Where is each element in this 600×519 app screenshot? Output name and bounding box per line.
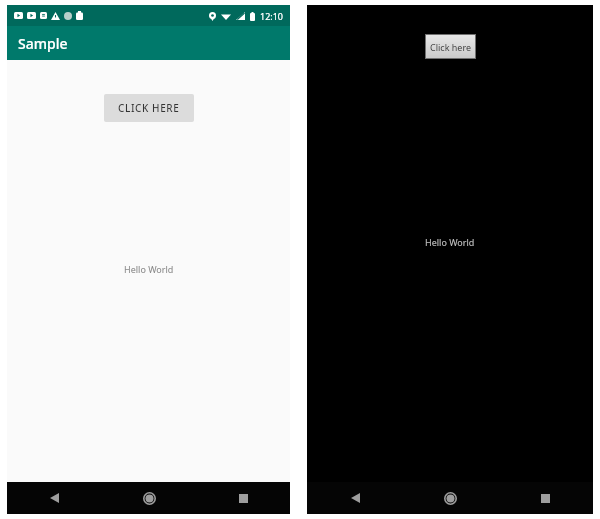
staticText: Hello World — [124, 263, 174, 275]
button[interactable]: Recents — [196, 482, 290, 514]
staticText: Sample — [18, 34, 68, 53]
staticText: Hello World — [425, 236, 475, 248]
button[interactable]: Recents — [498, 482, 593, 514]
staticText: 12:10 — [260, 10, 284, 22]
button[interactable]: Home — [102, 482, 196, 514]
button[interactable]: Back — [7, 482, 102, 514]
button[interactable]: Home — [403, 482, 498, 514]
button[interactable]: Back — [307, 482, 403, 514]
staticText: CLICK HERE — [118, 101, 180, 115]
button[interactable]: Click here — [425, 34, 476, 59]
button[interactable]: CLICK HERE — [104, 94, 194, 122]
staticText: Click here — [430, 41, 472, 53]
